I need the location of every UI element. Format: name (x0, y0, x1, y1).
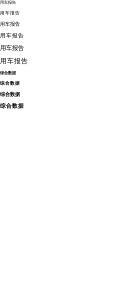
staticText: 综合数据 (0, 102, 24, 109)
staticText: 综合数据 (0, 80, 20, 86)
staticText: 用车报告 (0, 32, 24, 39)
staticText: 综合数据 (0, 91, 20, 97)
staticText: 用车报告 (0, 21, 20, 27)
staticText: 用车报告 (0, 10, 20, 16)
staticText: 用车报告 (0, 44, 24, 52)
staticText: 用车报告 (0, 0, 16, 5)
staticText: 用车报告 (0, 57, 28, 65)
staticText: 综合数据 (0, 70, 16, 75)
